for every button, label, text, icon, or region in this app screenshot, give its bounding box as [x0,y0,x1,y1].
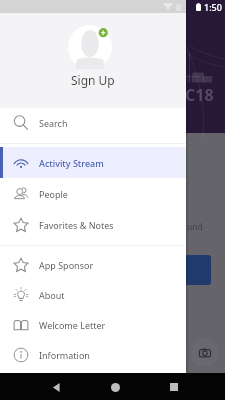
staticText: und [187,221,203,233]
button[interactable]: Favorites & Notes [0,209,186,240]
button[interactable]: Take photo [190,338,219,367]
button[interactable]: Home [107,379,123,395]
staticText: Welcome Letter [39,319,106,331]
button[interactable]: Back [48,379,64,395]
button[interactable]: Search [0,108,186,138]
staticText: Favorites & Notes [39,219,114,231]
staticText: App Sponsor [39,259,94,271]
button[interactable] [172,255,211,285]
button[interactable]: Activity Stream [0,147,186,178]
staticText: Sign Up [71,72,115,88]
staticText: Search [39,117,68,129]
button[interactable]: About [0,280,186,310]
button[interactable]: People [0,178,186,209]
staticText: Information [39,349,90,361]
staticText: People [39,188,68,200]
button[interactable]: App Sponsor [0,250,186,280]
staticText: 1:50 [204,1,222,13]
button[interactable]: Information [0,340,186,370]
button[interactable]: Recents [166,379,182,395]
button[interactable]: Welcome Letter [0,310,186,340]
staticText: About [39,289,65,301]
staticText: C18 [185,84,214,106]
staticText: Activity Stream [39,157,104,169]
